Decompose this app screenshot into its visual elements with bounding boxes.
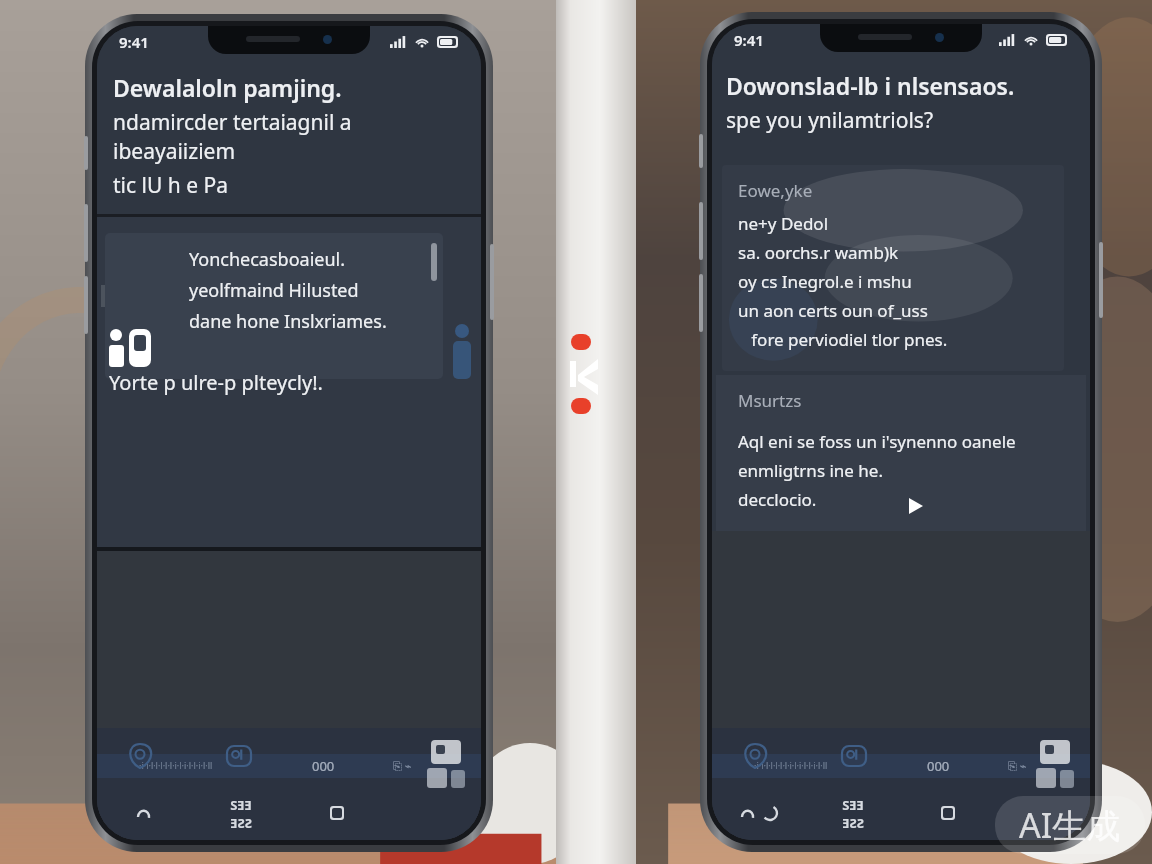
staticText: fore perviodiel tlor pnes. [738, 328, 948, 351]
staticText: ·i·i·l·l·l·l·l·i·l·i·l·l·i·l·ll [754, 759, 828, 771]
staticText: AI生成 [1019, 802, 1121, 848]
button[interactable]: Play [902, 493, 928, 519]
staticText: Aql eni se foss un i'synenno oanele [738, 430, 1016, 453]
staticText: tic lU h e Pa [113, 171, 228, 200]
button[interactable]: Eowe,yke [722, 165, 1064, 371]
staticText: yeolfmaind Hilusted [189, 278, 359, 303]
button[interactable]: Home [97, 796, 193, 830]
staticText: ndamircder tertaiagnil a ibeayaiiziem [113, 108, 467, 166]
staticText: decclocio. [738, 488, 817, 511]
staticText: ƎƧƧ [230, 814, 252, 830]
staticText: 9:41 [734, 30, 764, 50]
staticText: ƎƧƧ [842, 814, 864, 830]
staticText: SƎƎ [842, 796, 864, 814]
staticText: 000 [927, 757, 950, 775]
button[interactable]: Yonchecasboaieul. [105, 233, 443, 379]
button[interactable]: More [995, 796, 1090, 830]
staticText: un aon certs oun of_uss [738, 299, 928, 322]
staticText: SƎƎ [230, 796, 252, 814]
button[interactable]: Home [712, 796, 806, 830]
button[interactable]: Recents [900, 796, 995, 830]
staticText: Yorte p ulre-p plteycly!. [109, 369, 323, 396]
button[interactable]: Msurtzs [716, 375, 1086, 531]
staticText: enmligtrns ine he. [738, 459, 883, 482]
staticText: Eowe,yke [738, 179, 813, 202]
staticText: ne+y Dedol [738, 212, 829, 235]
button[interactable]: Recents [289, 796, 385, 830]
button[interactable]: Menu [806, 796, 900, 830]
staticText: 000 [312, 757, 335, 775]
staticText: dane hone Inslxriames. [189, 309, 387, 334]
staticText: Yonchecasboaieul. [189, 247, 346, 272]
staticText: ⎘ ⌁ [393, 758, 412, 773]
staticText: 9:41 [119, 32, 149, 52]
staticText: spe you ynilamtriols? [726, 106, 934, 135]
button[interactable]: More [385, 796, 481, 830]
staticText: Dewalaloln pamjing. [113, 72, 342, 103]
staticText: oy cs Inegrol.e i mshu [738, 270, 912, 293]
staticText: ⎘ ⌁ [1008, 758, 1027, 773]
staticText: Msurtzs [738, 389, 802, 412]
staticText: sa. oorchs.r wamb)k [738, 241, 899, 264]
staticText: ·i·i·l·l·l·l·l·i·l·i·l·l·i·l·ll [139, 759, 213, 771]
button[interactable]: Menu [193, 796, 289, 830]
staticText: Dowonslad-lb i nlsensaos. [726, 70, 1015, 101]
